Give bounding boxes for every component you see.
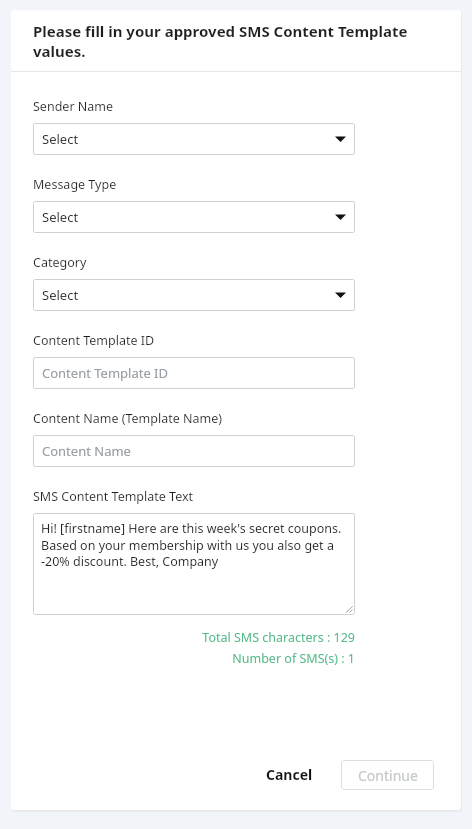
staticText: Sender Name <box>33 98 114 115</box>
staticText: Cancel <box>266 765 313 784</box>
staticText: Content Name <box>42 442 131 460</box>
staticText: Select <box>42 286 79 304</box>
staticText: Category <box>33 254 87 271</box>
button[interactable]: Select <box>33 201 355 233</box>
button[interactable]: Hi! [firstname] Here are this week's sec… <box>33 513 355 615</box>
staticText: Content Name (Template Name) <box>33 410 223 427</box>
staticText: Content Template ID <box>42 364 168 382</box>
button[interactable]: Content Template ID <box>33 357 355 389</box>
button[interactable]: Select <box>33 123 355 155</box>
staticText: Number of SMS(s) : 1 <box>232 650 355 667</box>
button[interactable]: Content Name <box>33 435 355 467</box>
button[interactable]: Continue <box>341 760 434 790</box>
staticText: Content Template ID <box>33 332 155 349</box>
button[interactable]: Select <box>33 279 355 311</box>
staticText: Select <box>42 130 79 148</box>
staticText: Message Type <box>33 176 117 193</box>
staticText: Continue <box>358 766 418 785</box>
button[interactable]: Cancel <box>256 757 323 792</box>
staticText: Total SMS characters : 129 <box>202 629 355 646</box>
staticText: Hi! [firstname] Here are this week's sec… <box>41 520 348 569</box>
staticText: Please fill in your approved SMS Content… <box>33 21 461 61</box>
staticText: SMS Content Template Text <box>33 488 194 505</box>
staticText: Select <box>42 208 79 226</box>
